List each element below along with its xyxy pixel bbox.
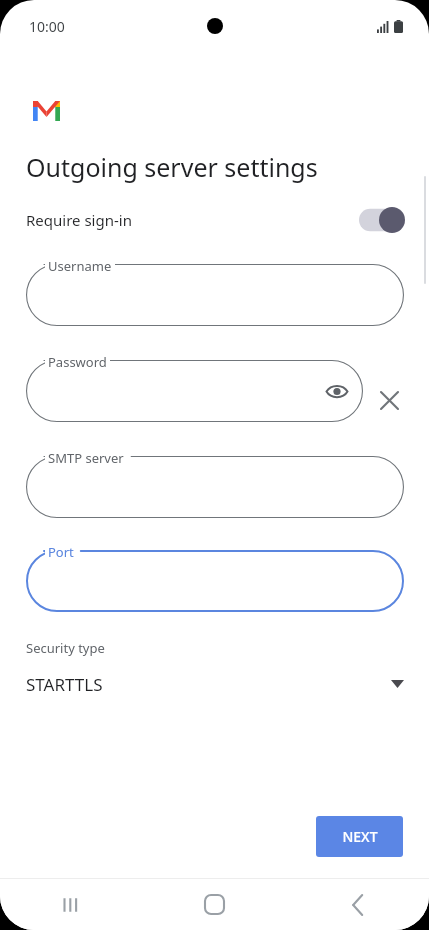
staticText: STARTTLS <box>26 673 103 696</box>
staticText: Password <box>48 353 107 371</box>
button[interactable]: Clear password <box>374 385 404 415</box>
button[interactable]: Back <box>286 879 429 930</box>
staticText: Outgoing server settings <box>26 150 318 184</box>
button[interactable]: Username <box>26 264 404 326</box>
button[interactable]: Require sign-in <box>0 199 429 241</box>
button[interactable]: Password <box>26 360 363 422</box>
button[interactable]: SMTP server <box>26 456 404 518</box>
button[interactable]: STARTTLS <box>0 664 429 704</box>
button[interactable]: Port <box>26 550 404 612</box>
button[interactable]: Recents <box>0 879 143 930</box>
staticText: SMTP server <box>48 449 124 467</box>
staticText: Security type <box>26 639 105 657</box>
staticText: Username <box>48 257 112 275</box>
staticText: NEXT <box>342 827 378 846</box>
staticText: Require sign-in <box>26 210 132 230</box>
staticText: 10:00 <box>29 17 65 36</box>
button[interactable]: Require sign-in toggle <box>359 207 405 233</box>
button[interactable]: Home <box>143 879 286 930</box>
button[interactable]: NEXT <box>316 816 403 857</box>
staticText: Port <box>48 543 74 561</box>
button[interactable]: Show password <box>321 375 353 407</box>
